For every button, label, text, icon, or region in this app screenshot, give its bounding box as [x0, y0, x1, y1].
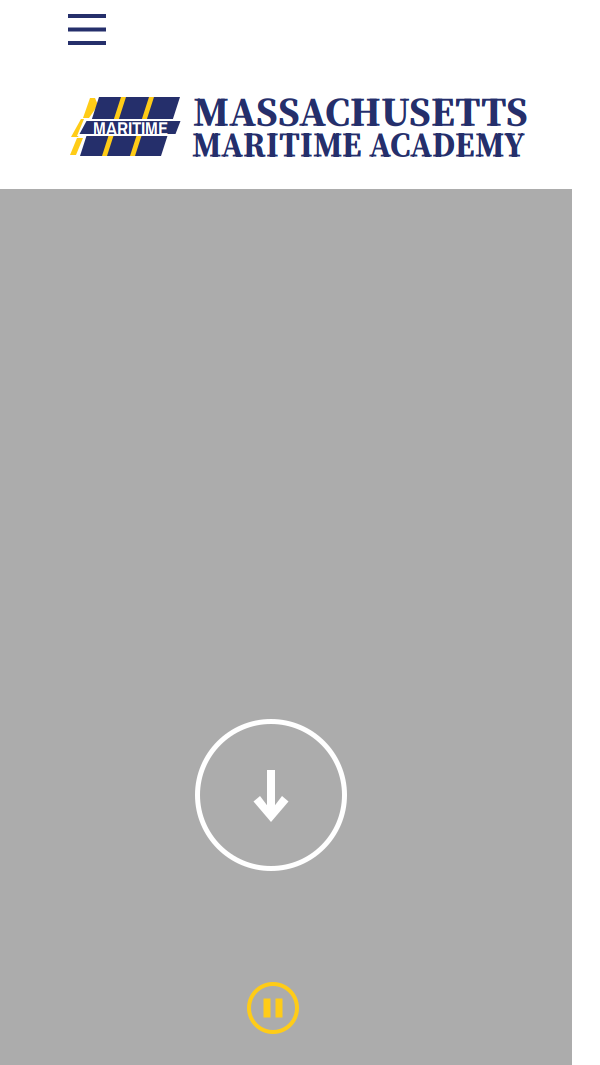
button[interactable]: Menu	[58, 4, 116, 55]
button[interactable]: Massachusetts Maritime Academy home	[68, 89, 538, 163]
button[interactable]: Scroll down	[191, 715, 351, 875]
staticText: MARITIME	[93, 116, 168, 141]
staticText: MARITIME ACADEMY	[192, 122, 525, 168]
button[interactable]: Pause background video	[245, 980, 301, 1036]
staticText: MASSACHUSETTS	[193, 83, 528, 140]
